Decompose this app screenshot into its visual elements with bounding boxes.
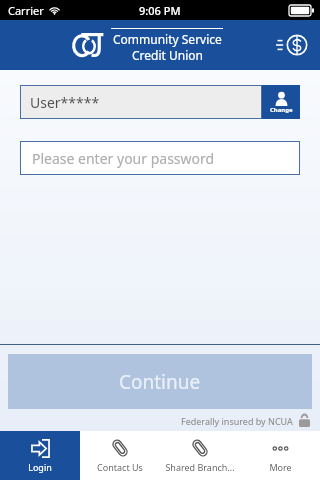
- staticText: User*****: [30, 93, 100, 112]
- button[interactable]: Quick balance: [270, 24, 312, 66]
- button[interactable]: Please enter your password: [20, 141, 300, 175]
- staticText: Community Service: [113, 31, 222, 47]
- staticText: Carrier: [8, 3, 44, 18]
- staticText: Continue: [119, 369, 201, 395]
- staticText: Please enter your password: [32, 149, 215, 168]
- button[interactable]: Shared Branch...: [160, 431, 240, 480]
- button[interactable]: Continue: [8, 354, 312, 409]
- button[interactable]: More: [240, 431, 320, 480]
- button[interactable]: Contact Us: [80, 431, 160, 480]
- staticText: Shared Branch...: [165, 461, 235, 473]
- staticText: Login: [28, 461, 52, 473]
- button[interactable]: Change: [262, 85, 300, 119]
- staticText: Contact Us: [97, 461, 143, 473]
- staticText: More: [269, 461, 292, 473]
- button[interactable]: Login: [0, 431, 80, 480]
- staticText: Credit Union: [132, 47, 203, 63]
- staticText: Change: [270, 106, 293, 114]
- button[interactable]: User*****: [20, 85, 262, 119]
- staticText: Federally insured by NCUA: [181, 415, 293, 427]
- staticText: 9:06 PM: [139, 3, 181, 18]
